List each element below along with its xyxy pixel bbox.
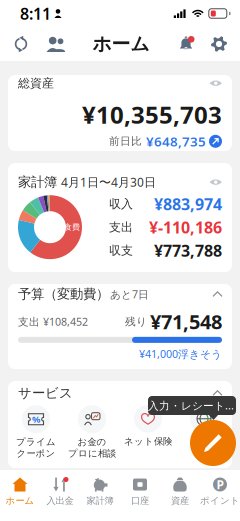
staticText: プライム [16,436,56,448]
button[interactable]: 入力・レシート撮影 [190,420,236,466]
staticText: 口座 [131,495,149,506]
staticText: ¥648,735 [146,132,206,150]
staticText: ホーム [5,495,34,506]
button[interactable]: 折りたたむ [213,391,222,395]
staticText: 入出金 [46,495,73,506]
button[interactable]: 表示切替 [209,179,222,186]
button[interactable]: % [12,405,60,459]
button[interactable]: 家族 [43,26,69,62]
button[interactable]: 表示切替 [209,80,222,87]
staticText: 食費 [64,222,80,232]
staticText: 家計簿 [18,174,57,190]
staticText: ¥-110,186 [149,217,222,238]
staticText: お金の [77,436,106,448]
staticText: 支出 ¥108,452 [18,314,88,329]
staticText: 残り [125,315,147,328]
button[interactable]: お金の [68,405,116,459]
button[interactable]: 口座 [120,470,160,521]
button[interactable]: 折りたたむ [213,292,222,296]
staticText: ホーム [92,32,149,55]
staticText: 4月1日〜4月30日 [61,174,156,190]
staticText: 前日比 [109,135,142,148]
staticText: ポイント [200,495,240,506]
button[interactable]: 詳細 [209,135,222,148]
staticText: 8:11 [20,3,51,24]
staticText: 資産 [171,495,189,506]
button[interactable]: 家計簿 [80,470,120,521]
button[interactable]: 光回線 [180,405,228,459]
button[interactable]: ネット保険 [124,405,172,459]
staticText: ¥41,000浮きそう [139,347,222,361]
staticText: 支出 [109,220,133,234]
staticText: あと7日 [110,287,149,301]
staticText: % [32,413,40,425]
staticText: 家計簿 [86,495,113,506]
staticText: 収支 [109,243,133,258]
staticText: P [216,476,223,492]
button[interactable]: 資産 [160,470,200,521]
button[interactable]: 更新 [8,26,34,62]
button[interactable]: P [200,470,240,521]
staticText: サービス [18,385,73,401]
staticText: 予算（変動費） [18,286,109,302]
staticText: クーポン [16,448,55,459]
staticText: 入力・レシート撮影 [148,398,236,413]
staticText: プロに相談 [68,448,116,459]
staticText: 総資産 [18,76,54,90]
button[interactable]: 設定 [206,26,232,62]
button[interactable]: お知らせ [173,26,199,62]
staticText: 光回線 [190,436,217,447]
staticText: ネット保険 [124,436,172,447]
button[interactable]: ホーム [0,470,40,521]
staticText: ¥71,548 [150,308,222,335]
staticText: ¥10,355,703 [82,99,222,130]
staticText: ¥883,974 [154,193,222,214]
button[interactable]: 入出金 [40,470,80,521]
staticText: ¥773,788 [154,240,222,261]
staticText: 収入 [109,197,133,211]
